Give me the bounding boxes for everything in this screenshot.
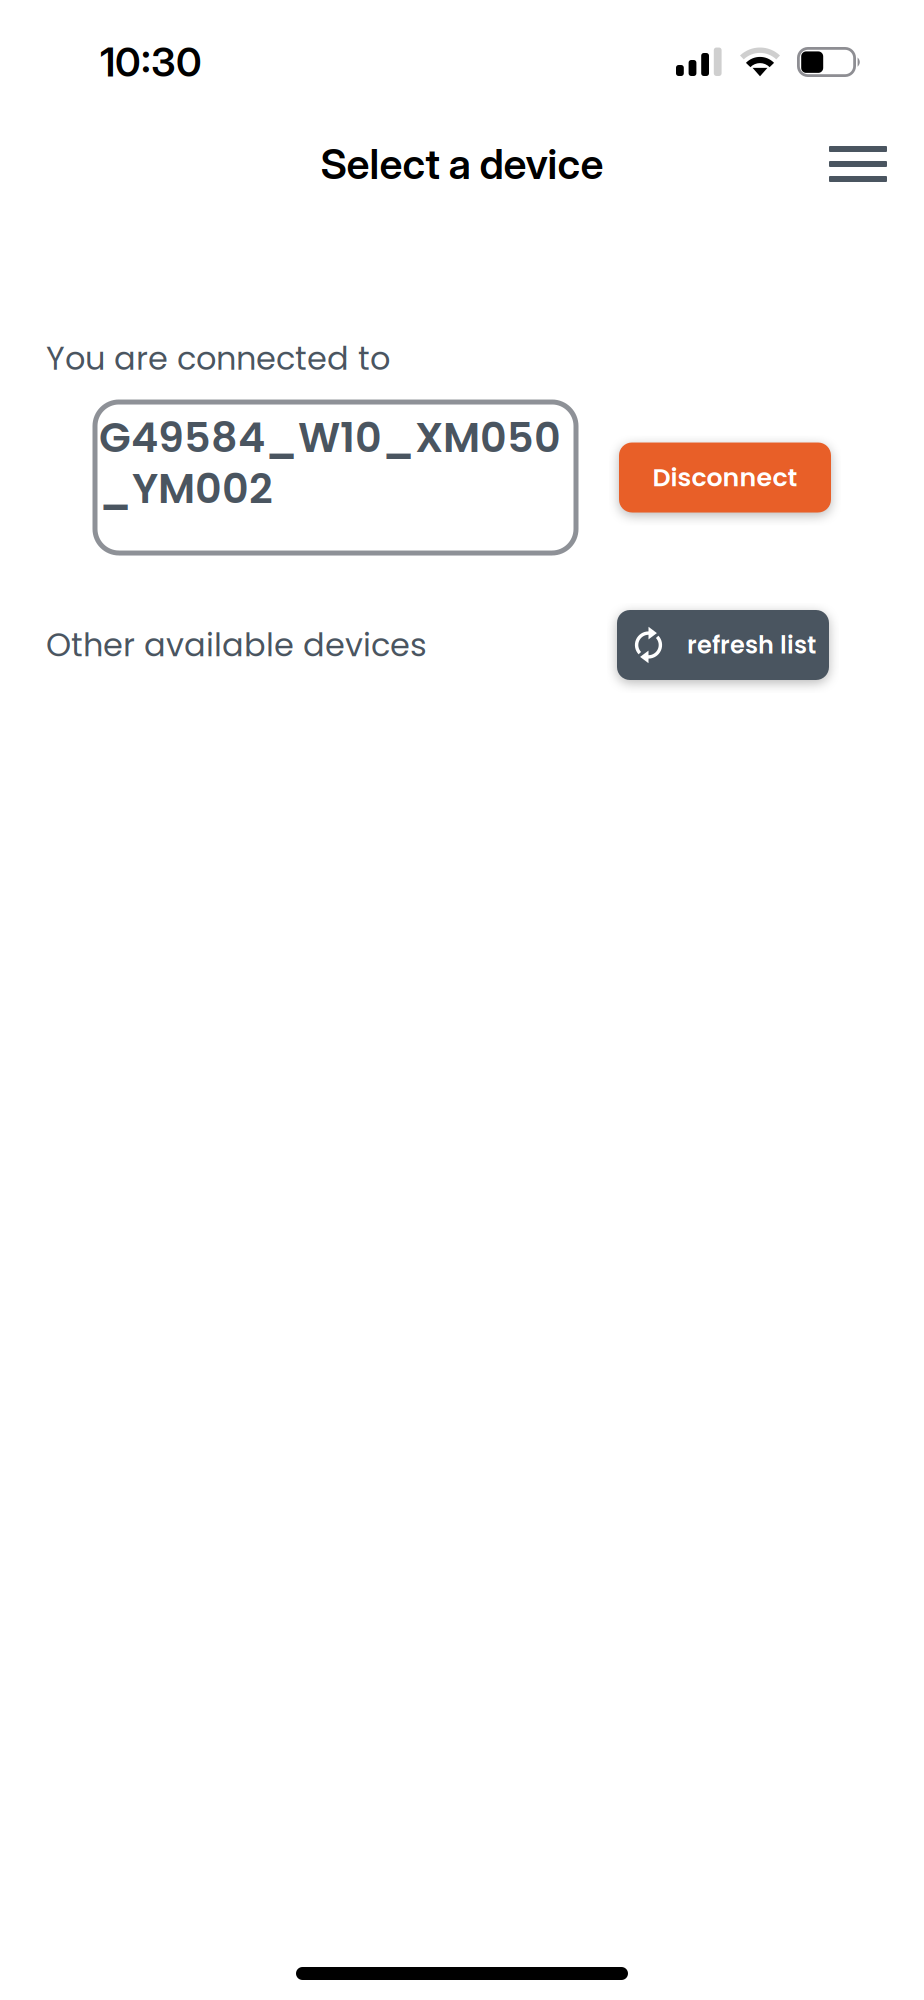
button[interactable]: Disconnect (619, 442, 831, 512)
staticText: G49584_W10_XM050 (99, 409, 561, 466)
staticText: Other available devices (46, 623, 427, 667)
staticText: Disconnect (652, 460, 797, 495)
staticText: refresh list (687, 628, 816, 662)
staticText: Select a device (320, 139, 603, 189)
staticText: _YM002 (99, 460, 273, 517)
staticText: You are connected to (46, 336, 390, 381)
staticText: 10:30 (100, 38, 202, 86)
button[interactable]: refresh list (617, 610, 829, 680)
button[interactable]: Menu (818, 131, 898, 197)
